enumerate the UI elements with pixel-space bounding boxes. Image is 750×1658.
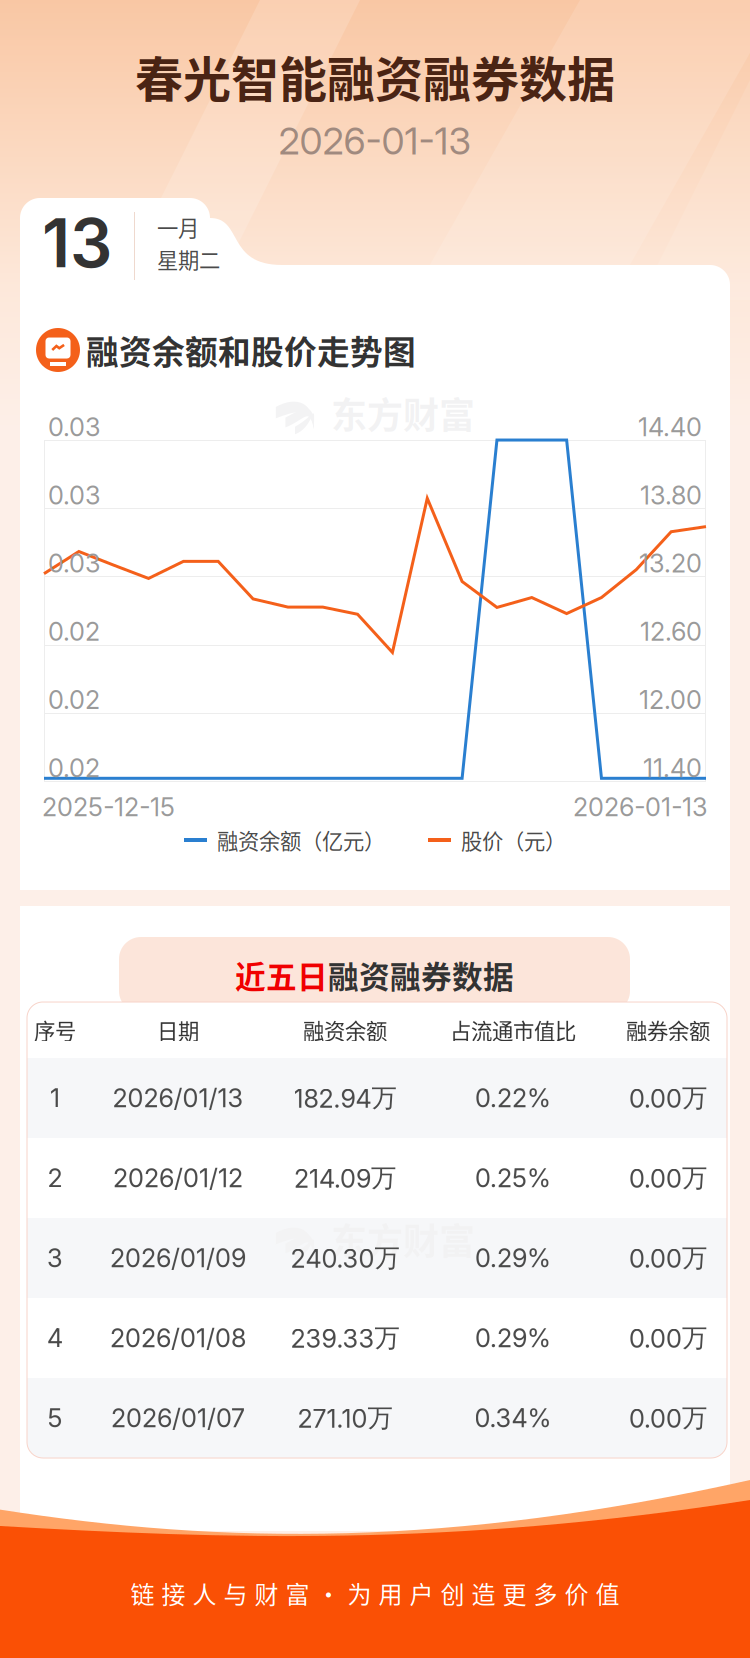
staticText: 240.30万	[290, 1242, 399, 1274]
staticText: 1	[50, 1083, 60, 1113]
staticText: 0.03	[48, 412, 101, 442]
staticText: 12.60	[640, 616, 702, 647]
staticText: 11.40	[643, 753, 702, 783]
staticText: 0.22%	[475, 1083, 551, 1113]
staticText: 13.20	[639, 548, 702, 579]
staticText: 2026/01/08	[110, 1323, 246, 1353]
staticText: 东方财富	[331, 387, 475, 439]
staticText: 东方财富	[331, 1213, 475, 1265]
staticText: 融资余额（亿元）	[217, 825, 385, 855]
staticText: 股价（元）	[461, 825, 566, 855]
staticText: 2026/01/09	[110, 1243, 246, 1273]
staticText: 融券余额	[626, 1015, 710, 1045]
staticText: 3	[47, 1243, 63, 1273]
staticText: 2026/01/13	[112, 1083, 243, 1113]
staticText: 182.94万	[293, 1082, 396, 1114]
staticText: 占流通市值比	[450, 1015, 576, 1045]
staticText: 271.10万	[297, 1402, 392, 1434]
staticText: 融资融券数据	[328, 953, 514, 997]
staticText: 0.00万	[629, 1402, 707, 1434]
staticText: 序号	[34, 1015, 76, 1045]
staticText: 0.00万	[629, 1322, 707, 1354]
staticText: 0.25%	[475, 1163, 551, 1193]
staticText: 12.00	[639, 684, 702, 715]
staticText: 0.00万	[629, 1082, 707, 1114]
staticText: 2026-01-13	[573, 792, 708, 822]
staticText: 239.33万	[290, 1322, 399, 1354]
staticText: 2026/01/12	[113, 1163, 243, 1193]
staticText: 一月	[157, 212, 199, 242]
staticText: 近五日	[235, 953, 328, 997]
staticText: 0.03	[48, 480, 101, 511]
staticText: 14.40	[638, 412, 702, 442]
staticText: 2	[47, 1163, 62, 1193]
staticText: 融资余额	[303, 1015, 387, 1045]
staticText: 0.00万	[629, 1162, 707, 1194]
staticText: 0.34%	[474, 1403, 551, 1433]
staticText: 13.80	[640, 480, 702, 511]
staticText: 4	[47, 1323, 63, 1353]
staticText: 2025-12-15	[42, 792, 175, 822]
staticText: 链接人与财富·为用户创造更多价值	[130, 1576, 619, 1610]
staticText: 0.02	[48, 616, 100, 647]
staticText: 214.09万	[294, 1162, 396, 1194]
staticText: 0.00万	[629, 1242, 707, 1274]
staticText: 0.29%	[475, 1323, 551, 1353]
staticText: 0.03	[48, 548, 101, 579]
staticText: 融资余额和股价走势图	[86, 326, 416, 374]
staticText: 2026-01-13	[278, 118, 471, 164]
staticText: 0.02	[48, 753, 100, 783]
staticText: 13	[42, 203, 112, 283]
staticText: 0.02	[48, 684, 100, 715]
staticText: 星期二	[157, 244, 220, 274]
staticText: 0.29%	[475, 1243, 551, 1273]
staticText: 2026/01/07	[111, 1403, 245, 1433]
staticText: 日期	[157, 1015, 199, 1045]
staticText: 春光智能融资融券数据	[135, 41, 615, 111]
staticText: 5	[47, 1403, 62, 1433]
